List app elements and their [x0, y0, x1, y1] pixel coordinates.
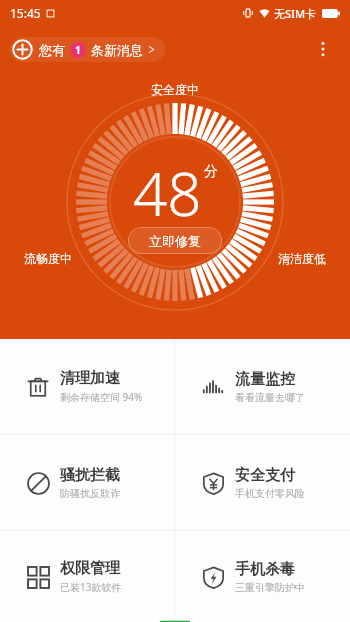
staticText: 看看流量去哪了	[235, 391, 305, 404]
staticText: 立即修复	[149, 233, 201, 249]
button[interactable]: 您有	[10, 37, 165, 62]
staticText: 已装13款软件	[60, 580, 122, 594]
staticText: 条新消息	[91, 42, 143, 58]
staticText: 流量监控	[235, 370, 295, 389]
staticText: 剩余存储空间 94%	[60, 390, 143, 404]
staticText: 防骚扰反欺诈	[60, 487, 120, 500]
button[interactable]: 骚扰拦截	[0, 435, 174, 530]
staticText: 您有	[39, 42, 65, 58]
staticText: 清洁度低	[278, 251, 326, 266]
button[interactable]: 清理加速	[0, 339, 174, 434]
button[interactable]: 流量监控	[175, 339, 350, 434]
staticText: 手机支付零风险	[235, 487, 305, 500]
button[interactable]: 手机杀毒	[175, 531, 350, 622]
staticText: 清理加速	[60, 369, 120, 388]
staticText: 48	[133, 152, 202, 234]
staticText: 分	[204, 163, 218, 181]
staticText: 安全度中	[151, 82, 199, 97]
button[interactable]: 安全支付	[175, 435, 350, 530]
staticText: 15:45	[10, 5, 41, 21]
button[interactable]: 权限管理	[0, 531, 174, 622]
staticText: 流畅度中	[24, 251, 72, 266]
button[interactable]: 立即修复	[128, 227, 222, 254]
staticText: 无SIM卡	[274, 6, 317, 21]
button[interactable]: More options	[306, 32, 340, 66]
staticText: 安全支付	[235, 466, 295, 485]
staticText: 骚扰拦截	[60, 466, 120, 485]
staticText: 三重引擎防护中	[235, 581, 305, 594]
staticText: 权限管理	[60, 559, 120, 578]
staticText: 手机杀毒	[235, 560, 295, 579]
staticText: 1	[75, 43, 81, 57]
